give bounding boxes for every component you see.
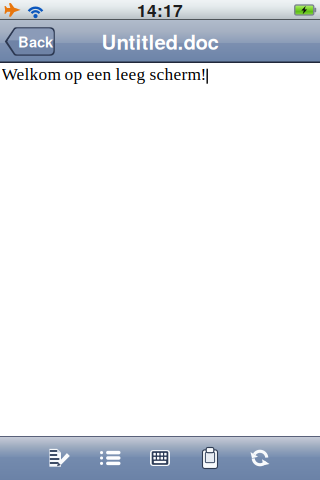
button[interactable]: Outline (85, 436, 135, 480)
button[interactable]: Sync (235, 436, 285, 480)
button[interactable]: Compose (35, 436, 85, 480)
button[interactable]: Keyboard (135, 436, 185, 480)
staticText: Welkom op een leeg scherm! (1, 64, 206, 84)
staticText: 14:17 (137, 0, 183, 22)
button[interactable]: Clipboard (185, 436, 235, 480)
staticText: Untitled.doc (101, 27, 218, 56)
staticText: Back (18, 31, 53, 52)
button[interactable]: Back (5, 27, 55, 56)
